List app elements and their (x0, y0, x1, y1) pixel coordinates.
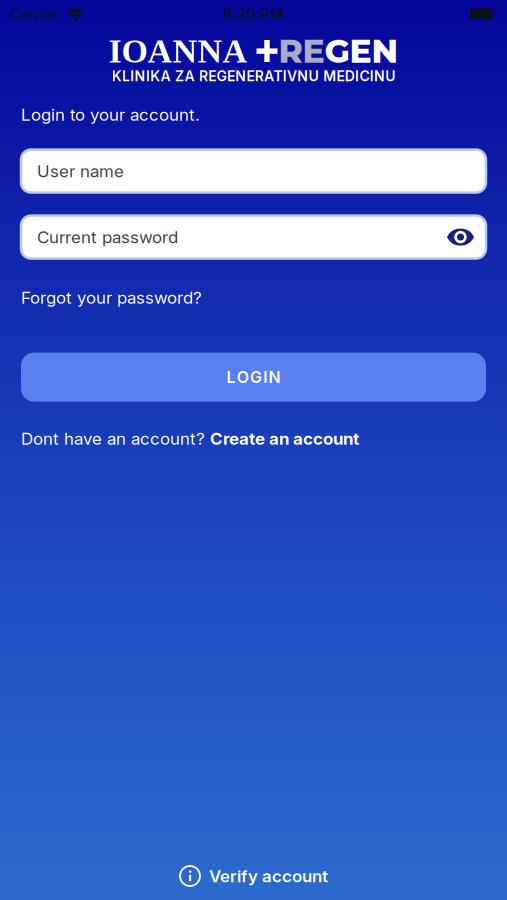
staticText: IOANNA (108, 32, 247, 70)
staticText: KLINIKA ZA REGENERATIVNU MEDICINU (112, 68, 395, 84)
staticText: 8:20 PM (222, 5, 284, 23)
button[interactable]: Create an account (210, 429, 359, 449)
button[interactable]: Show password (437, 216, 486, 259)
staticText: LOGIN (226, 368, 281, 387)
button[interactable]: User name (21, 150, 486, 193)
staticText: Login to your account. (21, 104, 200, 125)
staticText: Carrier (10, 5, 60, 23)
staticText: Current password (37, 227, 178, 247)
button[interactable]: Current password (21, 216, 486, 259)
staticText: Forgot your password? (21, 288, 202, 308)
staticText: User name (37, 161, 124, 181)
button[interactable]: Forgot your password? (21, 288, 202, 308)
staticText: Dont have an account? (21, 429, 210, 449)
staticText: Create an account (210, 429, 359, 449)
staticText: GEN (324, 31, 398, 71)
staticText: RE (278, 31, 324, 71)
button[interactable]: LOGIN (21, 353, 486, 402)
staticText: Verify account (209, 866, 328, 886)
button[interactable]: Verify account (179, 865, 328, 887)
